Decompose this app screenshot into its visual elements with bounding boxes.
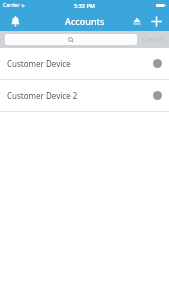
staticText: 5:33 PM xyxy=(74,2,95,9)
button[interactable]: Customer Device 2 xyxy=(0,80,169,111)
button[interactable]: Add account xyxy=(146,11,166,31)
button[interactable]: Cancel xyxy=(137,31,169,48)
staticText: Customer Device xyxy=(7,58,71,69)
staticText: Carrier xyxy=(3,2,20,9)
staticText: Cancel xyxy=(142,35,164,45)
button[interactable]: Export xyxy=(128,12,146,30)
button[interactable]: Customer Device xyxy=(0,48,169,79)
button[interactable]: Notifications xyxy=(6,12,24,30)
staticText: Customer Device 2 xyxy=(7,90,78,101)
staticText: Accounts xyxy=(65,15,105,27)
button[interactable] xyxy=(5,34,137,45)
